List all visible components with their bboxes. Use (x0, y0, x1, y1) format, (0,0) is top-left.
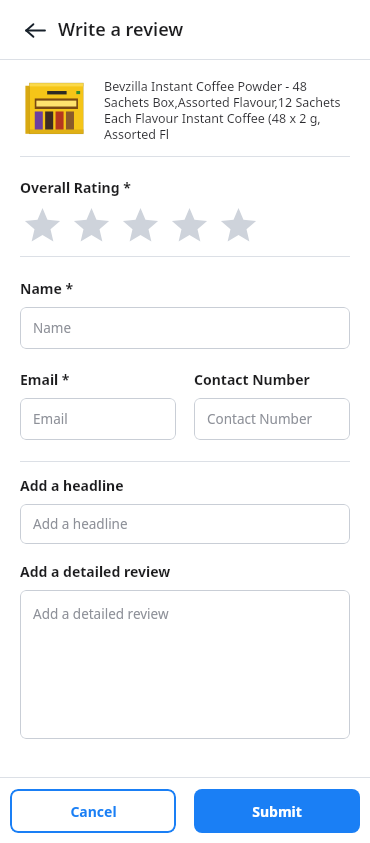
staticText: Name * (20, 279, 74, 298)
staticText: Add a detailed review (33, 605, 169, 623)
button[interactable]: Rate 1 stars (18, 206, 67, 244)
staticText: Cancel (70, 802, 117, 821)
staticText: Bevzilla Instant Coffee Powder - 48 Sach… (104, 78, 350, 143)
button[interactable]: Add a detailed review (20, 590, 350, 739)
button[interactable]: Name (20, 307, 350, 349)
button[interactable]: Rate 3 stars (116, 206, 165, 244)
staticText: Overall Rating * (20, 178, 131, 197)
staticText: Email * (20, 370, 70, 389)
button[interactable]: Cancel (10, 789, 176, 833)
staticText: Add a detailed review (20, 562, 171, 581)
button[interactable]: Rate 2 stars (67, 206, 116, 244)
button[interactable]: Add a headline (20, 504, 350, 544)
staticText: Submit (252, 802, 302, 821)
button[interactable]: Submit (194, 789, 360, 833)
button[interactable]: Rate 4 stars (165, 206, 214, 244)
staticText: Contact Number (194, 370, 310, 389)
button[interactable]: Rate 5 stars (214, 206, 263, 244)
button[interactable]: Email (20, 398, 176, 440)
staticText: Name (33, 319, 72, 337)
staticText: Add a headline (20, 476, 124, 495)
button[interactable]: Back (14, 9, 56, 51)
button[interactable]: Contact Number (194, 398, 350, 440)
staticText: Add a headline (33, 515, 128, 533)
staticText: Contact Number (207, 410, 313, 428)
staticText: Email (33, 410, 68, 428)
staticText: Write a review (58, 17, 184, 42)
